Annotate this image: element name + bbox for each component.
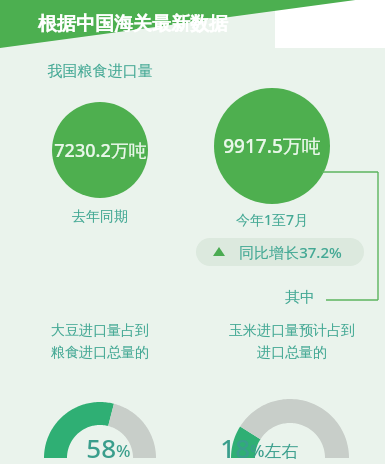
staticText: 9917.5万吨: [223, 133, 321, 159]
button[interactable]: 同比增长37.2%: [196, 238, 364, 266]
button[interactable]: 根据中国海关最新数据: [0, 0, 385, 48]
staticText: 同比增长37.2%: [239, 242, 342, 262]
staticText: 玉米进口量预计占到 进口总量的: [204, 322, 380, 361]
button[interactable]: 9917.5万吨: [214, 88, 330, 204]
staticText: 其中: [276, 288, 324, 307]
staticText: 58: [60, 430, 116, 464]
staticText: 去年同期: [52, 208, 148, 226]
staticText: 我国粮食进口量: [24, 62, 176, 81]
staticText: 7230.2万吨: [54, 138, 147, 163]
button[interactable]: 7230.2万吨: [52, 102, 148, 198]
staticText: 18: [194, 430, 250, 464]
staticText: 大豆进口量占到 粮食进口总量的: [24, 322, 176, 361]
staticText: 根据中国海关最新数据: [38, 12, 228, 36]
staticText: 今年1至7月: [214, 210, 330, 229]
staticText: %: [116, 439, 136, 462]
staticText: %左右: [250, 439, 314, 462]
